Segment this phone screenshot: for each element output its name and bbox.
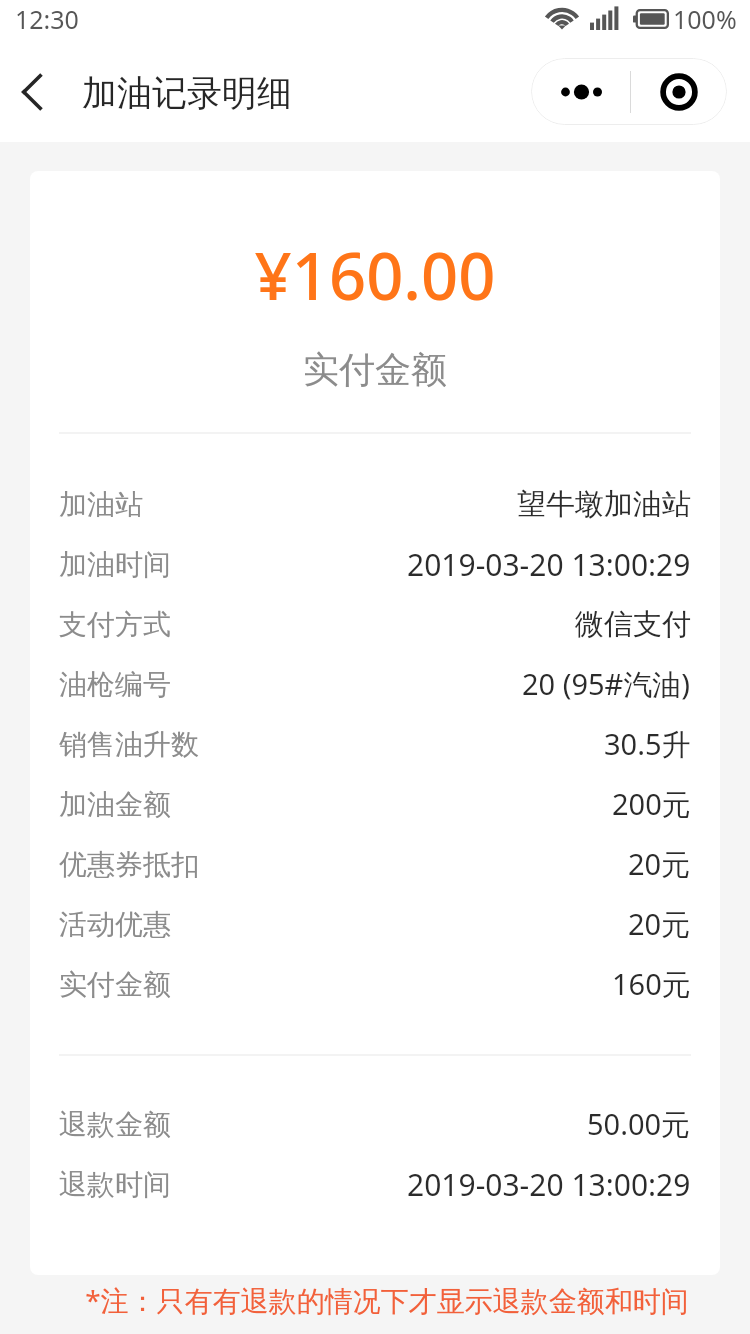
staticText: 退款金额	[59, 1107, 171, 1142]
staticText: 加油时间	[59, 547, 171, 582]
staticText: 实付金额	[59, 967, 171, 1002]
staticText: 退款时间	[59, 1167, 171, 1202]
staticText: 160元	[612, 964, 691, 1004]
button[interactable]: 支付方式	[30, 596, 720, 656]
button[interactable]: 活动优惠	[30, 896, 720, 956]
staticText: 12:30	[15, 2, 79, 36]
staticText: 200元	[612, 784, 691, 824]
staticText: 2019-03-20 13:00:29	[407, 1164, 691, 1205]
staticText: 加油站	[59, 487, 143, 522]
staticText: 望牛墩加油站	[517, 486, 691, 523]
button[interactable]: 实付金额	[30, 956, 720, 1016]
staticText: 100%	[673, 2, 737, 36]
button[interactable]: 加油时间	[30, 536, 720, 596]
staticText: 微信支付	[575, 606, 691, 643]
staticText: 加油金额	[59, 787, 171, 822]
staticText: ¥160.00	[30, 231, 720, 320]
staticText: 30.5升	[604, 724, 691, 764]
staticText: 20 (95#汽油)	[522, 664, 691, 704]
button[interactable]: Back	[0, 58, 64, 126]
staticText: 加油记录明细	[82, 71, 292, 115]
button[interactable]: 优惠券抵扣	[30, 836, 720, 896]
staticText: 活动优惠	[59, 907, 171, 942]
staticText: *注：只有有退款的情况下才显示退款金额和时间	[12, 1281, 750, 1319]
staticText: 实付金额	[30, 347, 720, 392]
staticText: 20元	[628, 844, 691, 884]
staticText: 油枪编号	[59, 667, 171, 702]
staticText: 优惠券抵扣	[59, 847, 199, 882]
button[interactable]: 加油金额	[30, 776, 720, 836]
button[interactable]: 退款时间	[30, 1156, 720, 1216]
staticText: 20元	[628, 904, 691, 944]
button[interactable]: 销售油升数	[30, 716, 720, 776]
staticText: 销售油升数	[59, 727, 199, 762]
staticText: 2019-03-20 13:00:29	[407, 544, 691, 585]
button[interactable]: More options	[531, 58, 630, 125]
button[interactable]: 加油站	[30, 476, 720, 536]
staticText: 50.00元	[587, 1104, 691, 1144]
button[interactable]: Close mini program	[631, 58, 727, 125]
staticText: 支付方式	[59, 607, 171, 642]
button[interactable]: 油枪编号	[30, 656, 720, 716]
button[interactable]: 退款金额	[30, 1096, 720, 1156]
